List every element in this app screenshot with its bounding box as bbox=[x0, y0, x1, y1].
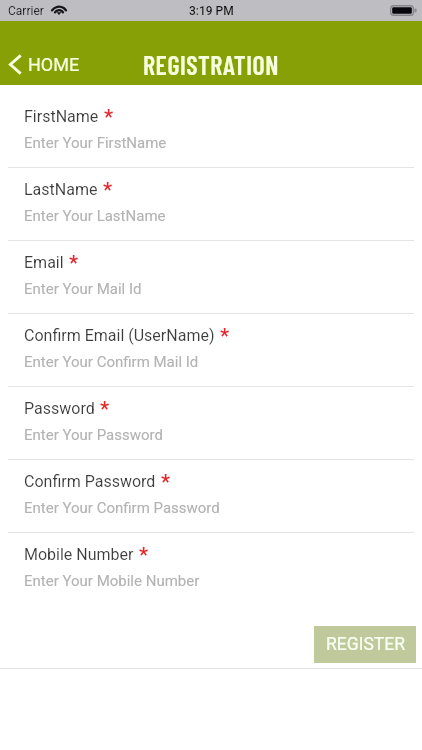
staticText: Enter Your Mail Id bbox=[24, 280, 142, 298]
staticText: Enter Your LastName bbox=[24, 207, 166, 225]
button[interactable]: FirstName bbox=[0, 95, 422, 168]
staticText: * bbox=[161, 470, 171, 493]
button[interactable]: Password bbox=[0, 387, 422, 460]
staticText: Enter Your Password bbox=[24, 426, 163, 444]
other: Back bbox=[9, 55, 21, 74]
button[interactable]: Back bbox=[0, 48, 90, 81]
staticText: Confirm Email (UserName) bbox=[24, 326, 215, 345]
staticText: Mobile Number bbox=[24, 545, 134, 564]
button[interactable]: Email bbox=[0, 241, 422, 314]
staticText: * bbox=[69, 251, 79, 274]
staticText: Enter Your FirstName bbox=[24, 134, 167, 152]
staticText: * bbox=[104, 105, 114, 128]
staticText: REGISTER bbox=[326, 634, 405, 655]
staticText: Enter Your Confirm Password bbox=[24, 499, 220, 517]
button[interactable]: Confirm Email (UserName) bbox=[0, 314, 422, 387]
staticText: Confirm Password bbox=[24, 472, 156, 491]
button[interactable]: Mobile Number bbox=[0, 533, 422, 606]
staticText: FirstName bbox=[24, 107, 99, 126]
staticText: * bbox=[103, 178, 113, 201]
button[interactable]: LastName bbox=[0, 168, 422, 241]
staticText: HOME bbox=[28, 54, 80, 75]
button[interactable]: REGISTER bbox=[314, 626, 416, 663]
staticText: LastName bbox=[24, 180, 98, 199]
staticText: 3:19 PM bbox=[189, 4, 234, 18]
staticText: Carrier bbox=[8, 4, 44, 18]
staticText: * bbox=[100, 397, 110, 420]
staticText: Enter Your Confirm Mail Id bbox=[24, 353, 199, 371]
staticText: REGISTRATION bbox=[143, 49, 279, 80]
staticText: Email bbox=[24, 253, 64, 272]
staticText: * bbox=[139, 543, 149, 566]
button[interactable]: Confirm Password bbox=[0, 460, 422, 533]
staticText: Password bbox=[24, 399, 95, 418]
staticText: Enter Your Mobile Number bbox=[24, 572, 200, 590]
staticText: * bbox=[220, 324, 230, 347]
